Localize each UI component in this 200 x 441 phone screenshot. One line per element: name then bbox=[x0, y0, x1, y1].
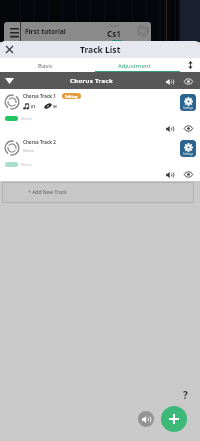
button[interactable]: + Add New Track bbox=[2, 182, 194, 203]
button[interactable] bbox=[90, 58, 180, 72]
button[interactable]: Add bbox=[161, 406, 187, 432]
staticText: Settings bbox=[183, 106, 193, 110]
button[interactable]: Mute track bbox=[163, 168, 176, 181]
staticText: Mono bbox=[21, 116, 32, 121]
button[interactable]: Chorus Track 1 bbox=[0, 89, 200, 135]
staticText: Cs1 bbox=[107, 28, 121, 39]
staticText: First tutorial bbox=[25, 27, 66, 36]
button[interactable]: Menu bbox=[4, 22, 24, 42]
button[interactable]: Settings bbox=[180, 140, 196, 157]
staticText: Adjustment bbox=[118, 62, 151, 70]
staticText: Track List bbox=[80, 44, 121, 56]
button[interactable]: Show track bbox=[182, 122, 195, 135]
button[interactable]: Show group bbox=[181, 74, 196, 89]
button[interactable]: Close bbox=[0, 41, 19, 58]
button[interactable]: Collapse group bbox=[0, 72, 19, 89]
staticText: M bbox=[52, 104, 57, 109]
staticText: Mono bbox=[23, 148, 34, 153]
button[interactable]: Chorus Track 2 bbox=[0, 135, 200, 181]
button[interactable] bbox=[0, 58, 90, 72]
staticText: Chorus Track bbox=[70, 77, 113, 85]
button[interactable]: Mute group bbox=[162, 74, 177, 89]
staticText: ? bbox=[183, 388, 188, 402]
staticText: Chorus Track 1 bbox=[23, 93, 56, 99]
staticText: Track bbox=[109, 23, 119, 28]
staticText: Settings bbox=[183, 152, 193, 156]
button[interactable]: Mute track bbox=[163, 122, 176, 135]
staticText: Chorus Track 2 bbox=[23, 139, 56, 145]
staticText: Basic bbox=[38, 62, 53, 70]
button[interactable]: Mute bbox=[138, 411, 154, 427]
staticText: Mono bbox=[21, 162, 32, 167]
button[interactable]: Expand bbox=[180, 58, 200, 72]
button[interactable]: Settings bbox=[180, 94, 196, 111]
staticText: 01 bbox=[30, 104, 36, 109]
button[interactable]: Show track bbox=[182, 168, 195, 181]
staticText: + Add New Track bbox=[28, 189, 67, 196]
staticText: Editing bbox=[65, 94, 78, 99]
